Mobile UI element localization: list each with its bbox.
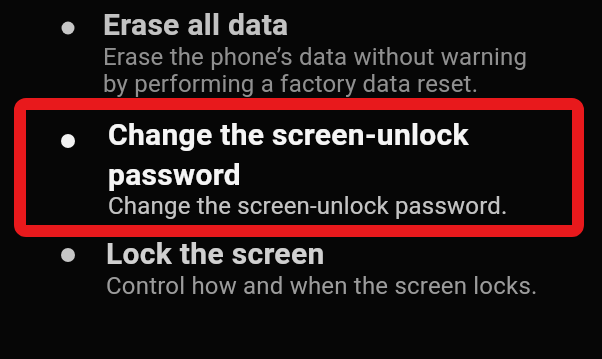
- staticText: Change the screen-unlock password: [108, 117, 469, 192]
- staticText: Control how and when the screen locks.: [106, 272, 538, 300]
- staticText: Erase the phone’s data without warning b…: [103, 43, 528, 98]
- staticText: Erase all data: [103, 7, 289, 42]
- staticText: Lock the screen: [106, 236, 325, 271]
- staticText: Change the screen-unlock password.: [108, 192, 508, 220]
